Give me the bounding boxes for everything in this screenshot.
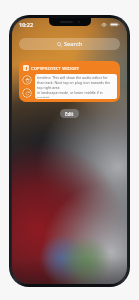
staticText: Search [64, 40, 82, 48]
staticText: Edit [65, 111, 74, 117]
button[interactable]: COPYPROTECT WIDGET [19, 61, 120, 102]
button[interactable]: Delete [22, 75, 32, 85]
staticText: 10:22 [19, 21, 34, 28]
button[interactable]: Edit [60, 109, 79, 118]
staticText: COPYPROTECT WIDGET [31, 66, 80, 71]
button[interactable]: Refresh [22, 88, 32, 98]
staticText: timeline. This will show the audio edito… [37, 75, 115, 98]
button[interactable]: Search [19, 38, 120, 50]
